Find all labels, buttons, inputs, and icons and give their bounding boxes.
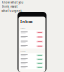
- staticText: Know what you: [2, 1, 24, 4]
- staticText: TODAY: [20, 27, 25, 29]
- staticText: what's urgent.: [2, 9, 23, 13]
- staticText: LATER: [20, 51, 25, 52]
- staticText: Inbox: [20, 19, 32, 24]
- staticText: think, revisit: [2, 5, 18, 8]
